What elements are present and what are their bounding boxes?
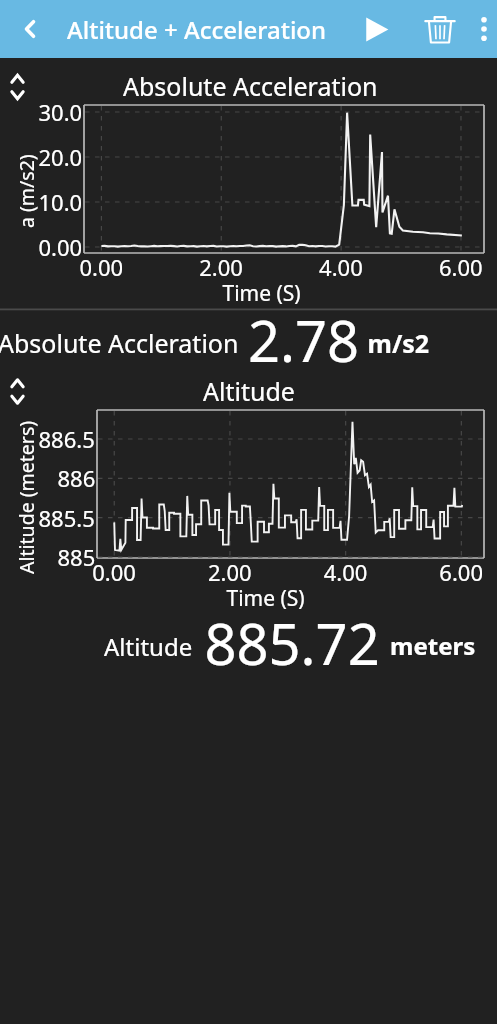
button[interactable] [0, 312, 497, 372]
button[interactable] [0, 616, 497, 676]
button[interactable]: Back [0, 0, 60, 58]
button[interactable]: More options [470, 0, 497, 58]
button[interactable]: Delete [414, 0, 466, 58]
button[interactable]: Play [350, 0, 402, 58]
staticText: Altitude + Acceleration [67, 13, 327, 46]
